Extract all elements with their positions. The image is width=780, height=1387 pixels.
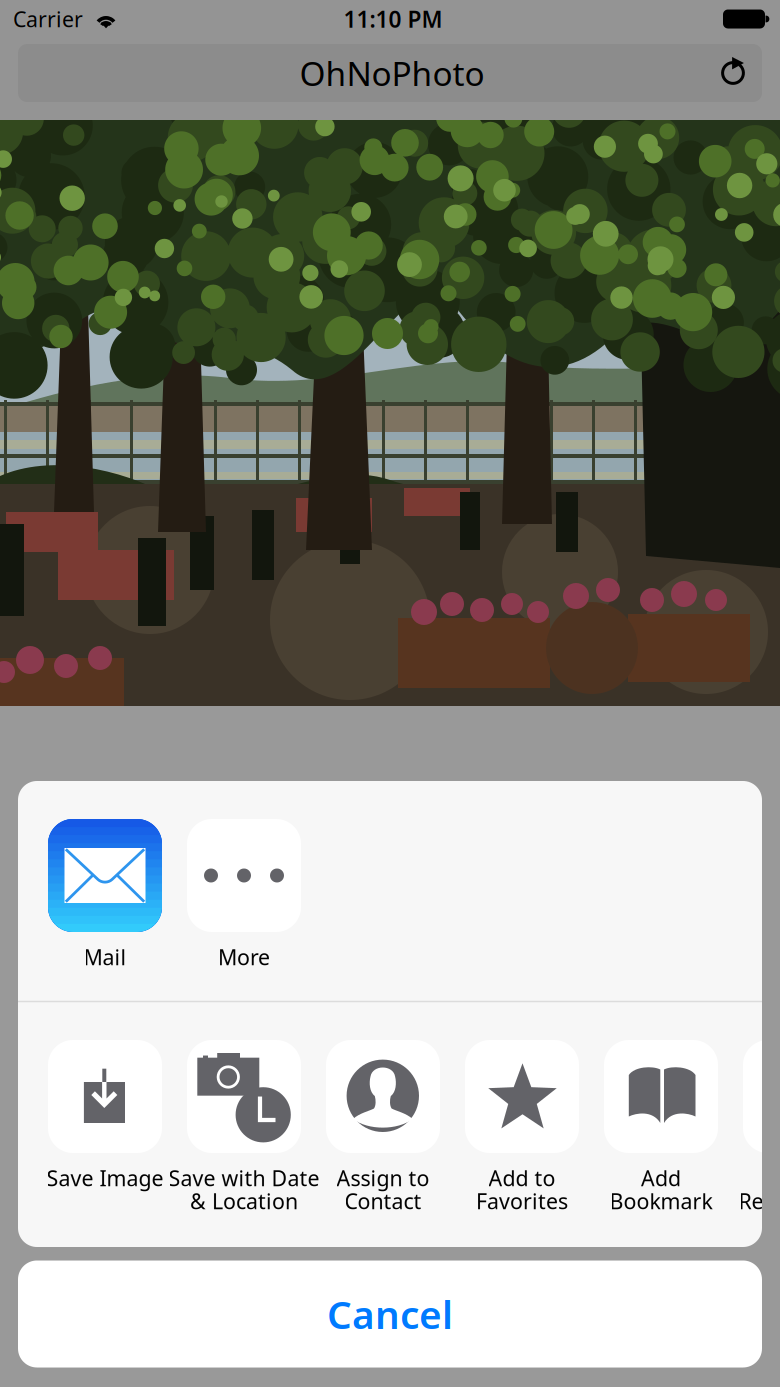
staticText: OhNoPhoto <box>299 51 484 95</box>
button[interactable]: Add to <box>465 1040 579 1153</box>
staticText: Save with Date <box>168 1164 319 1192</box>
button[interactable]: Save Image <box>48 1040 162 1153</box>
staticText: Bookmark <box>609 1187 712 1215</box>
button[interactable]: Save with Date <box>187 1040 301 1153</box>
staticText: Cancel <box>327 1288 453 1340</box>
staticText: Favorites <box>476 1187 568 1215</box>
staticText: Reading List <box>738 1187 780 1215</box>
staticText: Add to <box>488 1164 555 1192</box>
staticText: & Location <box>190 1187 298 1215</box>
staticText: More <box>218 943 270 971</box>
staticText: 11:10 PM <box>343 4 442 34</box>
button[interactable]: Refresh <box>696 44 770 102</box>
button[interactable]: Mail <box>48 819 162 932</box>
button[interactable]: Add <box>604 1040 718 1153</box>
button[interactable]: Add to <box>743 1040 780 1153</box>
button[interactable]: Cancel <box>18 1260 762 1367</box>
button[interactable]: Assign to <box>326 1040 440 1153</box>
staticText: Mail <box>83 943 126 971</box>
staticText: Save Image <box>46 1164 163 1192</box>
staticText: Contact <box>344 1187 421 1215</box>
staticText: Assign to <box>336 1164 429 1192</box>
staticText: Carrier <box>13 5 83 33</box>
staticText: Add <box>641 1164 681 1192</box>
button[interactable]: More <box>187 819 301 932</box>
